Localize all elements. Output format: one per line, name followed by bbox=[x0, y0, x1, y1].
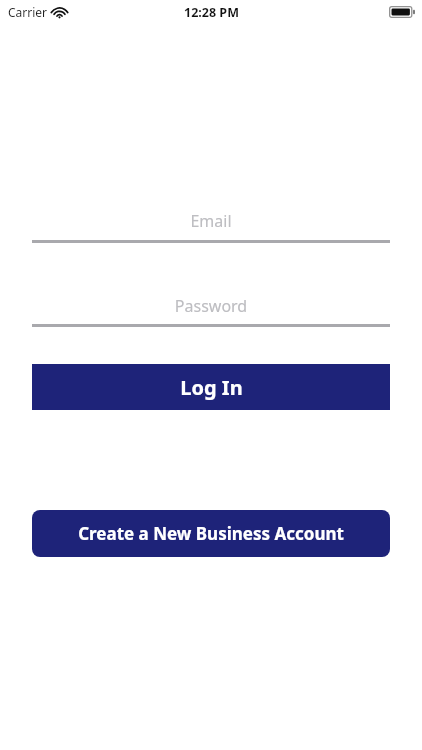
staticText: Log In bbox=[180, 374, 243, 401]
button[interactable]: Password bbox=[32, 288, 390, 327]
staticText: Password bbox=[32, 295, 390, 317]
button[interactable]: Log In bbox=[32, 364, 390, 410]
other: Wi-Fi signal bbox=[53, 7, 66, 18]
staticText: Create a New Business Account bbox=[78, 522, 344, 545]
staticText: Email bbox=[32, 210, 390, 232]
other: Battery full bbox=[389, 6, 415, 18]
staticText: Carrier bbox=[8, 4, 48, 20]
button[interactable]: Email bbox=[32, 203, 390, 243]
staticText: 12:28 PM bbox=[184, 4, 239, 21]
button[interactable]: Create a New Business Account bbox=[32, 510, 390, 557]
